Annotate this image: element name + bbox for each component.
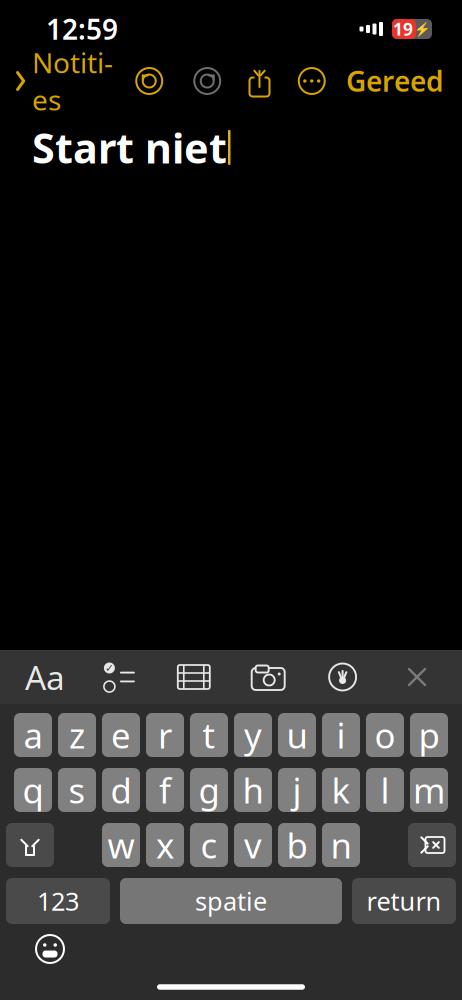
button[interactable]: s	[58, 768, 96, 812]
staticText: r	[158, 712, 172, 758]
button[interactable]: e	[102, 713, 140, 757]
staticText: return	[366, 884, 441, 918]
staticText: d	[110, 767, 131, 813]
button[interactable]: o	[366, 713, 404, 757]
button[interactable]: c	[190, 823, 228, 867]
staticText: Notities	[32, 44, 113, 118]
button[interactable]: a	[14, 713, 52, 757]
button[interactable]: Shift	[6, 823, 54, 867]
button[interactable]: u	[278, 713, 316, 757]
button[interactable]: Gereed	[342, 59, 448, 103]
staticText: k	[331, 767, 350, 813]
staticText: s	[68, 767, 85, 813]
button[interactable]: m	[410, 768, 448, 812]
staticText: t	[202, 712, 215, 758]
staticText: j	[292, 767, 301, 813]
button[interactable]: d	[102, 768, 140, 812]
button[interactable]: Undo	[127, 59, 171, 103]
staticText: 12:59	[46, 10, 118, 48]
staticText: h	[242, 767, 263, 813]
button[interactable]: b	[278, 823, 316, 867]
button[interactable]: q	[14, 768, 52, 812]
staticText: Aa	[25, 655, 65, 699]
button[interactable]: z	[58, 713, 96, 757]
button[interactable]: More	[290, 59, 334, 103]
button[interactable]: spatie	[120, 878, 342, 924]
staticText: ⚡	[414, 21, 431, 37]
button[interactable]: j	[278, 768, 316, 812]
button[interactable]: Redo	[185, 59, 229, 103]
staticText: a	[23, 712, 42, 758]
staticText: y	[244, 712, 262, 758]
staticText: f	[159, 767, 171, 813]
staticText: i	[336, 712, 345, 758]
button[interactable]: Emoji	[24, 926, 76, 972]
button[interactable]: Camera	[241, 652, 295, 702]
button[interactable]: t	[190, 713, 228, 757]
staticText: e	[111, 712, 131, 758]
staticText: p	[418, 712, 439, 758]
button[interactable]: h	[234, 768, 272, 812]
button[interactable]: w	[102, 823, 140, 867]
staticText: ✓	[105, 662, 114, 674]
staticText: Gereed	[346, 62, 444, 100]
staticText: u	[286, 712, 307, 758]
button[interactable]: 123	[6, 878, 110, 924]
staticText: o	[374, 712, 395, 758]
staticText: l	[380, 767, 389, 813]
staticText: x	[156, 822, 174, 868]
button[interactable]: Close keyboard	[390, 652, 444, 702]
staticText: w	[107, 822, 134, 868]
staticText: spatie	[195, 884, 267, 918]
button[interactable]: Table	[167, 652, 221, 702]
button[interactable]: k	[322, 768, 360, 812]
staticText: 19	[393, 17, 413, 40]
staticText: v	[244, 822, 262, 868]
button[interactable]: x	[146, 823, 184, 867]
button[interactable]: p	[410, 713, 448, 757]
button[interactable]: i	[322, 713, 360, 757]
staticText: q	[22, 767, 43, 813]
staticText: z	[69, 712, 85, 758]
staticText: 123	[37, 884, 79, 918]
button[interactable]: return	[352, 878, 456, 924]
button[interactable]: Text format	[18, 652, 72, 702]
staticText: n	[330, 822, 351, 868]
button[interactable]: Checklist	[92, 652, 146, 702]
button[interactable]: r	[146, 713, 184, 757]
staticText: g	[198, 767, 219, 813]
button[interactable]: f	[146, 768, 184, 812]
staticText: b	[286, 822, 307, 868]
button[interactable]: l	[366, 768, 404, 812]
button[interactable]: Delete	[408, 823, 456, 867]
button[interactable]: n	[322, 823, 360, 867]
staticText: m	[413, 767, 445, 813]
button[interactable]: Share	[237, 59, 281, 103]
button[interactable]: y	[234, 713, 272, 757]
staticText: c	[200, 822, 217, 868]
button[interactable]: Markup	[316, 652, 370, 702]
button[interactable]: v	[234, 823, 272, 867]
button[interactable]: g	[190, 768, 228, 812]
staticText: Start niet	[32, 120, 227, 175]
button[interactable]: Notities	[8, 59, 119, 103]
